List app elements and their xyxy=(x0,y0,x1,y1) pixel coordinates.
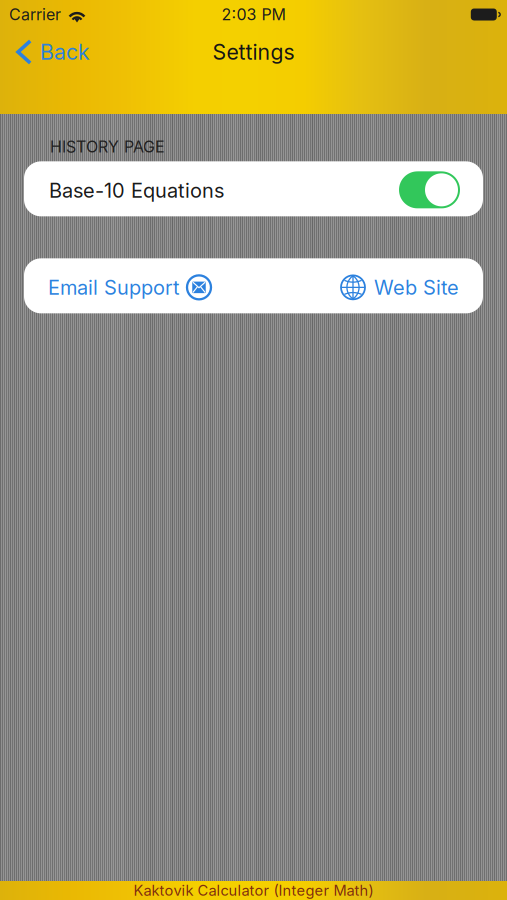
staticText: Kaktovik Calculator (Integer Math) xyxy=(133,882,373,899)
staticText: Settings xyxy=(212,39,294,65)
staticText: Base-10 Equations xyxy=(49,178,224,202)
button[interactable]: Base-10 Equations xyxy=(24,161,483,216)
staticText: Back xyxy=(40,39,90,65)
button[interactable]: Web Site xyxy=(340,257,459,314)
staticText: Web Site xyxy=(374,275,459,299)
staticText: HISTORY PAGE xyxy=(50,137,165,156)
button[interactable]: Email Support xyxy=(48,257,212,314)
staticText: Email Support xyxy=(48,275,180,299)
staticText: Carrier xyxy=(9,5,61,24)
staticText: 2:03 PM xyxy=(221,5,285,24)
button[interactable]: Back xyxy=(0,29,104,75)
